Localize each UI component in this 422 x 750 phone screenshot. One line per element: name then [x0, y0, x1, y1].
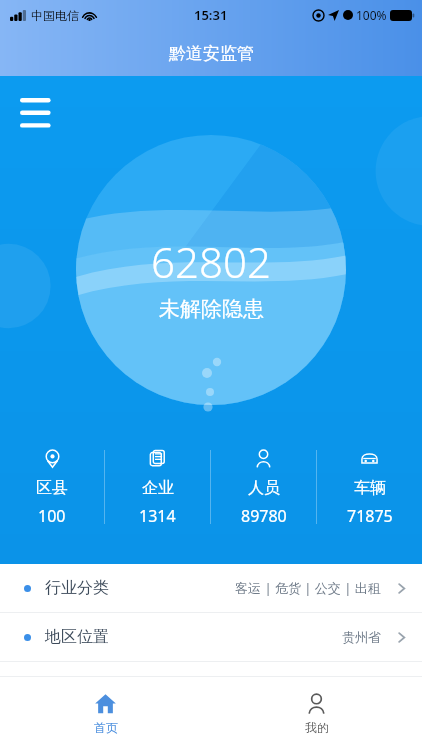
- staticText: 首页: [94, 720, 118, 735]
- staticText: 区县: [36, 478, 68, 498]
- staticText: 71875: [347, 505, 393, 527]
- button[interactable]: 首页: [0, 677, 211, 750]
- staticText: 客运 | 危货 | 公交 | 出租: [235, 579, 381, 597]
- staticText: 人员: [248, 478, 280, 498]
- staticText: 100%: [356, 7, 387, 23]
- button[interactable]: 区县: [0, 448, 104, 527]
- button[interactable]: 车辆: [317, 448, 422, 527]
- button[interactable]: Menu: [20, 96, 54, 130]
- staticText: 黔道安监管: [169, 43, 254, 64]
- staticText: 15:31: [194, 6, 228, 24]
- button[interactable]: 企业: [105, 448, 210, 527]
- staticText: 车辆: [354, 478, 386, 498]
- staticText: 地区位置: [45, 627, 109, 647]
- button[interactable]: 我的: [211, 677, 422, 750]
- button[interactable]: 地区位置: [0, 613, 422, 661]
- staticText: 行业分类: [45, 578, 109, 598]
- button[interactable]: 人员: [211, 448, 316, 527]
- staticText: 62802: [151, 233, 271, 290]
- button[interactable]: 行业分类: [0, 564, 422, 612]
- staticText: 100: [38, 505, 66, 527]
- staticText: 企业: [142, 478, 174, 498]
- staticText: 贵州省: [342, 629, 381, 645]
- staticText: 未解除隐患: [159, 296, 264, 322]
- staticText: 1314: [139, 505, 176, 527]
- staticText: 89780: [241, 505, 287, 527]
- staticText: 我的: [305, 720, 329, 735]
- staticText: 中国电信: [31, 8, 79, 23]
